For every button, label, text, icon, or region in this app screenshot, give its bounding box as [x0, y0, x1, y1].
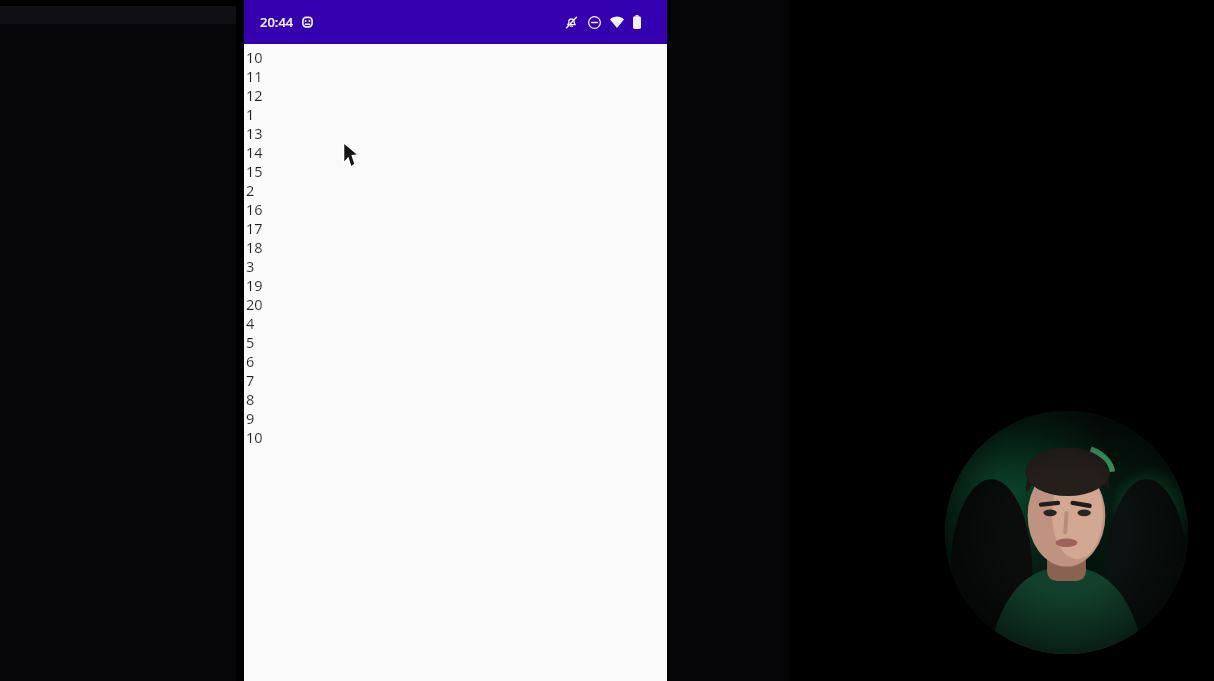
- button[interactable]: 10: [246, 47, 667, 66]
- button[interactable]: 18: [246, 237, 667, 256]
- other: Do not disturb: [588, 16, 601, 29]
- staticText: 19: [246, 275, 263, 294]
- button[interactable]: 15: [246, 161, 667, 180]
- staticText: 1: [246, 104, 255, 123]
- button[interactable]: 8: [246, 389, 667, 408]
- staticText: 20: [246, 294, 263, 313]
- button[interactable]: 12: [246, 85, 667, 104]
- button[interactable]: 6: [246, 351, 667, 370]
- staticText: 5: [246, 332, 255, 351]
- staticText: 6: [246, 351, 255, 370]
- other: Notifications silenced: [565, 16, 578, 29]
- button[interactable]: 5: [246, 332, 667, 351]
- staticText: 15: [246, 161, 263, 180]
- staticText: 10: [246, 47, 263, 66]
- staticText: 18: [246, 237, 263, 256]
- button[interactable]: 9: [246, 408, 667, 427]
- staticText: 13: [246, 123, 263, 142]
- button[interactable]: 7: [246, 370, 667, 389]
- staticText: 8: [246, 389, 255, 408]
- staticText: 4: [246, 313, 255, 332]
- staticText: 20:44: [260, 13, 294, 31]
- button[interactable]: 17: [246, 218, 667, 237]
- staticText: 3: [246, 256, 255, 275]
- staticText: 7: [246, 370, 255, 389]
- staticText: 16: [246, 199, 263, 218]
- button[interactable]: 11: [246, 66, 667, 85]
- button[interactable]: 10: [246, 427, 667, 446]
- button[interactable]: 13: [246, 123, 667, 142]
- button[interactable]: 19: [246, 275, 667, 294]
- button[interactable]: 4: [246, 313, 667, 332]
- staticText: 9: [246, 408, 255, 427]
- staticText: 12: [246, 85, 263, 104]
- other: Wi-Fi: [610, 17, 624, 28]
- button[interactable]: 3: [246, 256, 667, 275]
- button[interactable]: 16: [246, 199, 667, 218]
- staticText: 17: [246, 218, 263, 237]
- other: Battery: [633, 15, 641, 29]
- other: Debug: [302, 16, 313, 28]
- staticText: 11: [246, 66, 263, 85]
- button[interactable]: 20: [246, 294, 667, 313]
- staticText: 14: [246, 142, 263, 161]
- staticText: 2: [246, 180, 255, 199]
- button[interactable]: 2: [246, 180, 667, 199]
- button[interactable]: 14: [246, 142, 667, 161]
- button[interactable]: 1: [246, 104, 667, 123]
- staticText: 10: [246, 427, 263, 446]
